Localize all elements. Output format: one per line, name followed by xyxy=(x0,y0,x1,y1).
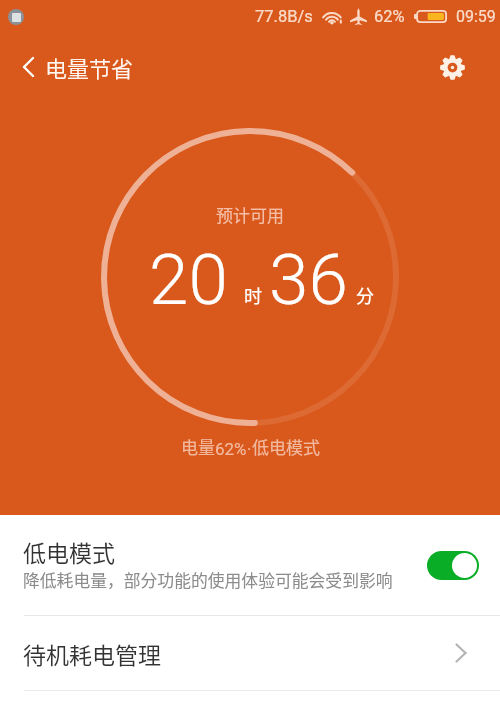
staticText: 分 xyxy=(356,282,374,308)
button[interactable]: Settings xyxy=(434,49,470,85)
staticText: 低电模式 xyxy=(252,434,320,459)
staticText: 电量 xyxy=(181,434,215,459)
button[interactable]: Low power mode toggle xyxy=(427,551,479,580)
staticText: 预计可用 xyxy=(216,202,284,227)
staticText: 62% xyxy=(374,7,405,26)
staticText: 62% xyxy=(215,439,247,459)
staticText: 待机耗电管理 xyxy=(23,637,456,670)
staticText: · xyxy=(247,439,252,459)
staticText: 77.8B/s xyxy=(255,7,313,26)
staticText: 09:59 xyxy=(456,7,496,26)
button[interactable]: Back xyxy=(12,51,44,83)
button[interactable]: 低电模式 xyxy=(0,515,500,615)
button[interactable]: 待机耗电管理 xyxy=(0,616,500,690)
staticText: 降低耗电量，部分功能的使用体验可能会受到影响 xyxy=(23,568,393,592)
staticText: 电量节省 xyxy=(45,51,134,83)
staticText: 低电模式 xyxy=(23,535,115,568)
staticText: 36 xyxy=(269,238,348,321)
staticText: 20 xyxy=(149,238,228,321)
staticText: 时 xyxy=(244,282,262,308)
